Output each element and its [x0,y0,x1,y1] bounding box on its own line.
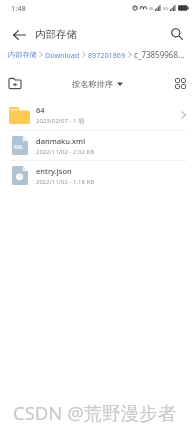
button[interactable]: XML [0,131,196,160]
button[interactable]: Grid view [169,72,191,94]
button[interactable]: 按名称排序 [72,79,123,89]
staticText: 1:48 [11,3,26,13]
staticText: 2022/11/02 - 1.18 KB [36,178,95,186]
staticText: danmaku.xml [36,136,86,146]
button[interactable]: 897201869 [88,50,126,60]
staticText: XML [14,144,23,150]
button[interactable]: 内部存储 [8,50,37,59]
staticText: 2022/11/02 - 2.02 KB [36,148,95,156]
button[interactable]: Back [6,17,33,44]
staticText: 内部存储 [35,28,77,41]
button[interactable]: Search [165,18,189,42]
button[interactable]: entry.json [0,161,196,190]
staticText: 64 [36,105,45,115]
staticText: 按名称排序 [72,79,113,89]
staticText: 2023/02/07 - 1 项 [36,117,84,125]
staticText: 5G [163,6,169,11]
staticText: CSDN @荒野漫步者 [13,400,177,425]
staticText: 46 [149,6,154,11]
button[interactable]: c_73859968... [134,49,185,60]
button[interactable]: 64 [0,100,196,130]
button[interactable]: Download [45,50,80,60]
button[interactable]: New folder [4,72,26,94]
staticText: entry.json [36,166,72,176]
